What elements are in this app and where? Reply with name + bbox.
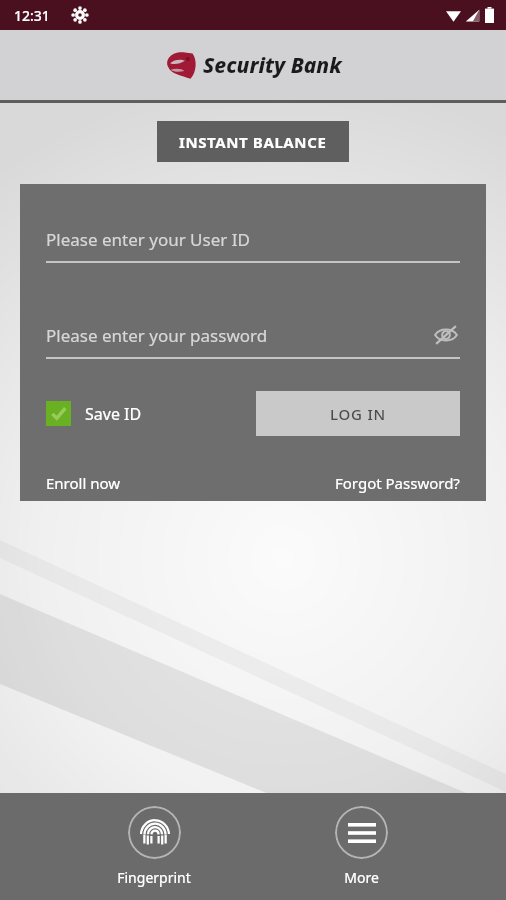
staticText: Save ID xyxy=(85,403,142,425)
staticText: Please enter your password xyxy=(46,324,268,347)
staticText: Fingerprint xyxy=(117,868,191,887)
other: Settings xyxy=(72,7,88,23)
staticText: INSTANT BALANCE xyxy=(179,132,327,152)
staticText: Please enter your User ID xyxy=(46,228,250,251)
staticText: Security Bank xyxy=(203,51,342,80)
button[interactable]: INSTANT BALANCE xyxy=(157,121,349,162)
staticText: Forgot Password? xyxy=(335,473,460,493)
button[interactable]: Enroll now xyxy=(46,473,121,493)
button[interactable]: Fingerprint xyxy=(107,802,201,891)
button[interactable]: Forgot Password? xyxy=(335,473,460,493)
button[interactable]: Save ID xyxy=(46,401,142,426)
button[interactable]: Please enter your password xyxy=(46,321,460,359)
staticText: Enroll now xyxy=(46,473,121,493)
staticText: More xyxy=(344,868,379,887)
button[interactable]: Show password xyxy=(432,321,460,349)
staticText: LOG IN xyxy=(330,404,387,424)
button[interactable]: More xyxy=(325,802,398,891)
staticText: 12:31 xyxy=(14,6,50,25)
button[interactable]: LOG IN xyxy=(256,391,460,436)
button[interactable]: Please enter your User ID xyxy=(46,228,460,263)
